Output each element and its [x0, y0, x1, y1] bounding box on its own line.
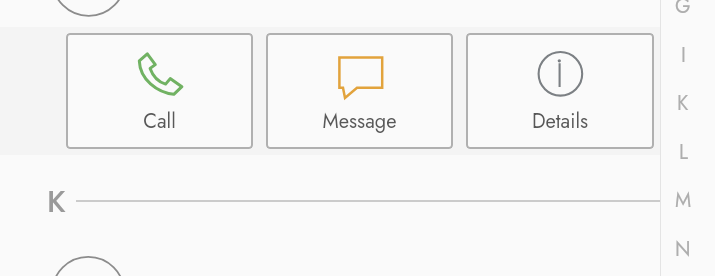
staticText: Message — [266, 107, 453, 136]
button[interactable]: N — [663, 234, 703, 264]
button[interactable]: Call — [66, 33, 253, 149]
staticText: K — [47, 180, 66, 223]
staticText: K — [677, 89, 689, 118]
button[interactable]: M — [663, 185, 703, 215]
staticText: I — [681, 41, 686, 70]
staticText: L — [679, 138, 688, 167]
button[interactable]: Details — [466, 33, 654, 149]
staticText: M — [675, 186, 692, 215]
button[interactable]: I — [663, 40, 703, 70]
staticText: Call — [66, 107, 253, 136]
button[interactable]: L — [663, 137, 703, 167]
staticText: N — [675, 235, 691, 264]
staticText: Details — [466, 107, 654, 136]
button[interactable]: K — [663, 88, 703, 118]
button[interactable]: Message — [266, 33, 453, 149]
button[interactable]: G — [663, 0, 703, 21]
staticText: G — [675, 0, 691, 21]
